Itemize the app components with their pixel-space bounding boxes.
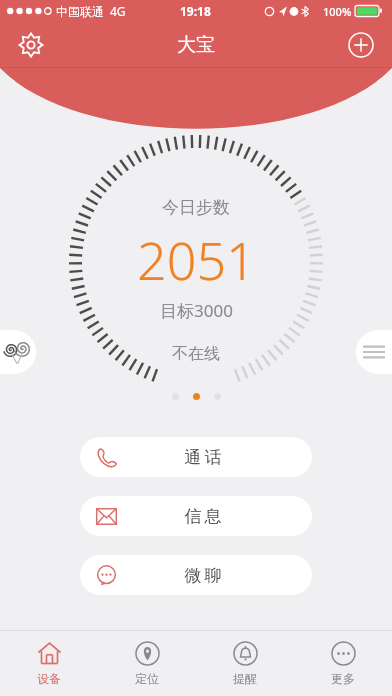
button[interactable]: 提醒 (196, 631, 294, 696)
staticText: 提醒 (233, 671, 257, 686)
staticText: 通话 (183, 447, 223, 468)
button[interactable]: 信息 (80, 496, 312, 536)
button[interactable]: 通话 (80, 437, 312, 477)
button[interactable]: Previous device (0, 330, 36, 374)
button[interactable]: Menu (356, 330, 392, 374)
staticText: 4G (110, 3, 126, 19)
staticText: 中国联通 (56, 4, 104, 19)
staticText: 大宝 (177, 33, 215, 57)
staticText: 信息 (183, 506, 223, 527)
staticText: 更多 (331, 671, 355, 686)
staticText: 微聊 (183, 565, 223, 586)
staticText: 100% (323, 4, 352, 19)
staticText: 设备 (37, 671, 61, 686)
staticText: 今日步数 (162, 197, 230, 218)
staticText: 2051 (137, 224, 256, 295)
staticText: 19:18 (180, 3, 211, 19)
button[interactable]: Settings (10, 24, 52, 66)
staticText: 不在线 (172, 344, 220, 364)
button[interactable]: 微聊 (80, 555, 312, 595)
button[interactable]: 定位 (98, 631, 196, 696)
button[interactable]: Add (340, 24, 382, 66)
staticText: 目标3000 (160, 299, 233, 322)
staticText: 定位 (135, 671, 159, 686)
button[interactable]: 更多 (294, 631, 392, 696)
button[interactable]: 设备 (0, 631, 98, 696)
